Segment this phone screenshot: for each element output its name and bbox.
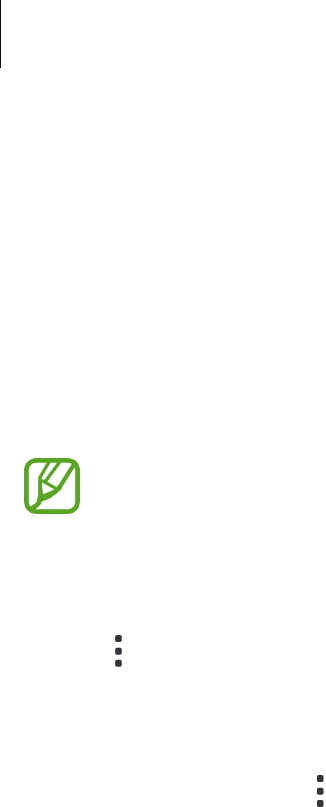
button[interactable]: More options [108, 628, 129, 674]
button[interactable]: S Note [24, 458, 80, 514]
button[interactable]: More options [310, 768, 326, 807]
